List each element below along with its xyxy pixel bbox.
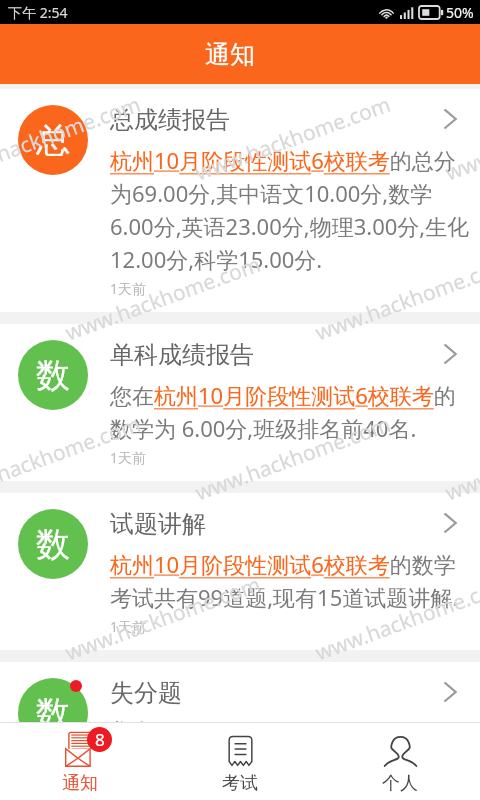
staticText: 通知 — [205, 39, 255, 70]
staticText: 总成绩报告 — [110, 105, 230, 135]
staticText: 数 — [36, 523, 70, 566]
button[interactable]: 个人 — [320, 723, 480, 800]
staticText: 数 — [36, 354, 70, 397]
staticText: 1天前 — [110, 448, 147, 467]
button[interactable]: 数 — [0, 493, 480, 650]
staticText: 总 — [36, 119, 70, 162]
staticText: www.hackhome.com — [441, 90, 480, 187]
staticText: 杭州10月阶段性测试6校联考的数学考试共有99道题,现有15道试题讲解. — [110, 549, 472, 613]
staticText: 您在 — [110, 718, 154, 722]
staticText: 个人 — [382, 772, 418, 795]
staticText: www.hackhome.com — [61, 250, 265, 347]
staticText: 数 — [36, 692, 70, 722]
staticText: www.hackhome.com — [0, 410, 145, 507]
staticText: www.hackhome.com — [311, 570, 480, 667]
staticText: 您在杭州10月阶段性测试6校联考的数学为 6.00分,班级排名前40名. — [110, 380, 472, 444]
staticText: 1天前 — [110, 617, 147, 636]
staticText: www.hackhome.com — [191, 410, 395, 507]
button[interactable]: 数 — [0, 662, 480, 722]
staticText: www.hackhome.com — [311, 250, 480, 347]
staticText: www.hackhome.com — [61, 570, 265, 667]
staticText: 杭州10月阶段性测试6校联考的总分为69.00分,其中语文10.00分,数学6.… — [110, 145, 472, 275]
button[interactable]: 总 — [0, 89, 480, 312]
staticText: 试题讲解 — [110, 509, 206, 539]
staticText: 单科成绩报告 — [110, 340, 254, 370]
button[interactable]: 数 — [0, 324, 480, 481]
staticText: 下午 2:54 — [8, 3, 68, 22]
staticText: www.hackhome.com — [0, 90, 145, 187]
staticText: 50% — [446, 3, 474, 22]
staticText: 考试 — [222, 772, 258, 795]
staticText: www.hackhome.com — [191, 90, 395, 187]
staticText: www.hackhome.com — [441, 410, 480, 507]
staticText: 8 — [95, 728, 105, 751]
staticText: 1天前 — [110, 279, 147, 298]
staticText: 通知 — [62, 772, 98, 795]
button[interactable]: 考试 — [160, 723, 320, 800]
button[interactable]: 8 — [0, 723, 160, 800]
staticText: 失分题 — [110, 678, 182, 708]
